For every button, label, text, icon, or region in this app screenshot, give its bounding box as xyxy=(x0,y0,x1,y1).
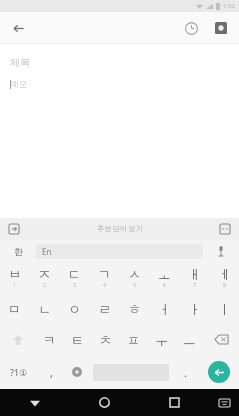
button[interactable]: Close keyboard xyxy=(0,389,69,416)
staticText: ㅇ xyxy=(68,301,81,317)
button[interactable]: ?1① xyxy=(0,355,38,389)
staticText: ㅔ xyxy=(218,266,231,282)
button[interactable]: ㅌ xyxy=(63,324,91,355)
staticText: 추천 단어 보기 xyxy=(97,224,143,234)
staticText: ㄱ xyxy=(98,266,111,282)
staticText: ㅍ xyxy=(127,332,140,348)
staticText: ㄴ xyxy=(38,301,51,317)
button[interactable]: Reminder xyxy=(179,16,203,40)
button[interactable]: En xyxy=(36,244,203,259)
staticText: 5 xyxy=(133,282,136,289)
staticText: ㅌ xyxy=(71,332,84,348)
button[interactable]: Backspace xyxy=(203,324,239,355)
staticText: ㄹ xyxy=(98,301,111,317)
staticText: ㄷ xyxy=(68,266,81,282)
button[interactable]: ㅐ xyxy=(179,262,209,293)
button[interactable]: ㅊ xyxy=(91,324,119,355)
staticText: ㅗ xyxy=(158,266,171,282)
button[interactable]: ㄷ xyxy=(59,262,89,293)
button[interactable]: ㅜ xyxy=(147,324,175,355)
staticText: ㅎ xyxy=(128,301,141,317)
button[interactable]: ㅁ xyxy=(0,293,29,324)
button[interactable]: Expand toolbar xyxy=(6,221,22,237)
staticText: 1 xyxy=(13,282,16,289)
staticText: ㅋ xyxy=(43,332,56,348)
button[interactable]: Keyboard settings xyxy=(217,221,233,237)
button[interactable]: ㅋ xyxy=(35,324,63,355)
staticText: 4 xyxy=(103,282,106,289)
button[interactable]: Hangul xyxy=(0,240,36,262)
staticText: 한 xyxy=(14,246,23,257)
staticText: 6 xyxy=(163,282,166,289)
button[interactable]: ㅓ xyxy=(149,293,179,324)
staticText: 3 xyxy=(73,282,76,289)
button[interactable]: Back xyxy=(6,16,30,40)
staticText: ㅡ xyxy=(183,332,196,348)
button[interactable]: ㅡ xyxy=(175,324,203,355)
staticText: ㅂ xyxy=(8,266,21,282)
staticText: En xyxy=(42,246,52,257)
staticText: 1:32 xyxy=(223,2,235,10)
button[interactable]: ㄱ xyxy=(89,262,119,293)
button[interactable]: ㅇ xyxy=(59,293,89,324)
button[interactable]: ㅅ xyxy=(119,262,149,293)
button[interactable]: ㅍ xyxy=(119,324,147,355)
staticText: . xyxy=(184,365,187,380)
staticText: 8 xyxy=(223,282,226,289)
button[interactable]: Change input method xyxy=(64,355,90,389)
button[interactable]: Shift xyxy=(0,324,35,355)
staticText: 메모 xyxy=(11,79,27,89)
button[interactable]: ㄴ xyxy=(29,293,59,324)
staticText: , xyxy=(50,365,53,380)
button[interactable]: ㅈ xyxy=(29,262,59,293)
staticText: 제목 xyxy=(10,56,30,69)
staticText: ㅅ xyxy=(128,266,141,282)
button[interactable]: Voice input xyxy=(203,240,239,262)
staticText: ㅐ xyxy=(188,266,201,282)
button[interactable]: . xyxy=(172,355,198,389)
button[interactable]: ㅗ xyxy=(149,262,179,293)
button[interactable]: , xyxy=(38,355,64,389)
button[interactable]: Enter xyxy=(198,355,239,389)
staticText: 2 xyxy=(43,282,46,289)
button[interactable]: ㅔ xyxy=(209,262,239,293)
staticText: ㅊ xyxy=(99,332,112,348)
button[interactable]: ㅏ xyxy=(179,293,209,324)
button[interactable]: Add image xyxy=(209,16,233,40)
staticText: ㅁ xyxy=(8,301,21,317)
button[interactable]: ㅣ xyxy=(209,293,239,324)
button[interactable]: ㄹ xyxy=(89,293,119,324)
button[interactable]: Switch keyboard xyxy=(209,389,239,416)
button[interactable]: Home xyxy=(69,389,139,416)
staticText: ㅜ xyxy=(155,332,168,348)
button[interactable]: ㅂ xyxy=(0,262,29,293)
staticText: ㅣ xyxy=(218,301,231,317)
staticText: ㅓ xyxy=(158,301,171,317)
staticText: 7 xyxy=(193,282,196,289)
staticText: ㅏ xyxy=(188,301,201,317)
staticText: ?1① xyxy=(10,366,28,378)
button[interactable]: Recents xyxy=(139,389,209,416)
staticText: ㅈ xyxy=(38,266,51,282)
button[interactable]: ㅎ xyxy=(119,293,149,324)
